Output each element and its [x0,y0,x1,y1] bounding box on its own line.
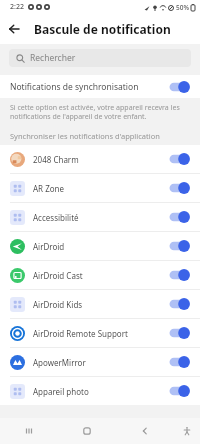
staticText: AirDroid Cast [33,270,168,281]
button[interactable]: Back [116,418,174,444]
staticText: 2048 Charm [33,154,168,165]
button[interactable]: Toggle [168,181,190,195]
staticText: Rechercher [30,52,76,64]
button[interactable]: Toggle [168,210,190,224]
button[interactable]: AR Zone [0,174,200,202]
button[interactable]: Notifications de synchronisation [0,75,200,98]
button[interactable]: AirDroid Remote Support [0,319,200,347]
button[interactable]: Appareil photo [0,377,200,405]
staticText: 50% [176,3,189,12]
button[interactable]: Recents [0,418,58,444]
staticText: Si cette option est activée, votre appar… [10,103,190,121]
button[interactable]: Toggle [168,152,190,166]
button[interactable]: Toggle [168,355,190,369]
button[interactable]: Accessibility [174,418,200,444]
button[interactable]: AirDroid Cast [0,261,200,289]
button[interactable]: Back [0,15,28,43]
button[interactable]: Toggle [168,80,190,94]
staticText: Accessibilité [33,212,168,223]
staticText: AR Zone [33,183,168,194]
button[interactable]: Toggle [168,239,190,253]
button[interactable]: Toggle [168,326,190,340]
button[interactable]: Toggle [168,384,190,398]
button[interactable]: Toggle [168,268,190,282]
staticText: Bascule de notification [34,21,171,37]
button[interactable]: 2048 Charm [0,145,200,173]
button[interactable]: Home [58,418,116,444]
staticText: AirDroid Remote Support [33,328,168,339]
button[interactable]: AirDroid Kids [0,290,200,318]
staticText: Synchroniser les notifications d'applica… [10,131,160,141]
staticText: ApowerMirror [33,357,168,368]
staticText: AirDroid Kids [33,299,168,310]
staticText: Appareil photo [33,386,168,397]
button[interactable]: ApowerMirror [0,348,200,376]
button[interactable]: Toggle [168,297,190,311]
button[interactable]: AirDroid [0,232,200,260]
staticText: 2:22 [10,2,24,12]
button[interactable]: Accessibilité [0,203,200,231]
button[interactable]: Rechercher [9,49,191,67]
staticText: Notifications de synchronisation [10,81,168,93]
staticText: AirDroid [33,241,168,252]
